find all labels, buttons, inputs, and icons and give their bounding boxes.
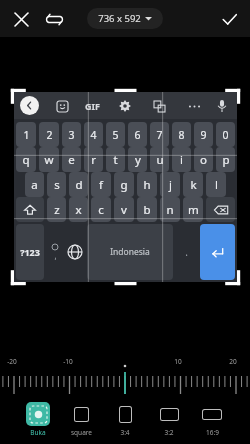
button[interactable]: Close <box>10 8 32 30</box>
button[interactable]: a <box>25 172 44 197</box>
button[interactable]: Shift <box>16 197 44 222</box>
staticText: 8 <box>178 128 185 142</box>
button[interactable]: r <box>84 147 103 172</box>
button[interactable]: 3:4 <box>113 402 137 437</box>
staticText: Indonesia <box>110 246 150 258</box>
button[interactable]: 4 <box>84 122 103 147</box>
staticText: 3 <box>68 128 75 142</box>
button[interactable]: square <box>69 402 93 437</box>
button[interactable]: Emoji <box>53 97 71 115</box>
button[interactable]: u <box>150 147 169 172</box>
staticText: , <box>54 250 57 261</box>
button[interactable]: 5 <box>106 122 125 147</box>
staticText: c <box>98 202 104 218</box>
button[interactable]: Comma <box>47 224 63 280</box>
button[interactable]: Done <box>218 8 240 30</box>
button[interactable]: e <box>62 147 81 172</box>
button[interactable]: Enter <box>200 224 235 280</box>
staticText: . <box>185 245 188 259</box>
staticText: y <box>135 152 141 168</box>
staticText: x <box>75 202 82 218</box>
button[interactable]: 736 x 592 <box>87 8 163 29</box>
staticText: b <box>143 202 151 218</box>
staticText: p <box>222 152 230 168</box>
button[interactable]: g <box>114 172 134 197</box>
staticText: square <box>71 428 92 437</box>
button[interactable]: l <box>206 172 226 197</box>
button[interactable]: w <box>39 147 59 172</box>
staticText: 16:9 <box>206 428 219 437</box>
button[interactable]: Rotate <box>43 8 65 30</box>
button[interactable]: q <box>16 147 36 172</box>
staticText: j <box>169 177 172 193</box>
staticText: 6 <box>134 128 141 142</box>
staticText: a <box>31 177 38 193</box>
button[interactable]: v <box>114 197 134 222</box>
button[interactable]: c <box>91 197 111 222</box>
button[interactable]: m <box>183 197 203 222</box>
button[interactable]: x <box>69 197 88 222</box>
button[interactable]: 16:9 <box>200 402 224 437</box>
staticText: 9 <box>200 128 207 142</box>
button[interactable]: 8 <box>172 122 191 147</box>
button[interactable]: 9 <box>194 122 213 147</box>
button[interactable]: s <box>47 172 66 197</box>
staticText: GIF <box>85 100 100 112</box>
button[interactable]: h <box>137 172 157 197</box>
button[interactable]: 6 <box>128 122 147 147</box>
button[interactable]: 3:2 <box>157 402 181 437</box>
button[interactable]: b <box>137 197 157 222</box>
button[interactable]: Indonesia <box>87 224 173 280</box>
button[interactable]: o <box>194 147 213 172</box>
staticText: l <box>215 177 218 193</box>
button[interactable]: f <box>91 172 111 197</box>
staticText: z <box>54 202 60 218</box>
staticText: 0 <box>222 128 229 142</box>
button[interactable]: More options <box>185 97 203 115</box>
button[interactable]: y <box>128 147 147 172</box>
staticText: Buka <box>30 428 46 437</box>
staticText: f <box>99 177 103 193</box>
staticText: 3:2 <box>164 428 174 437</box>
button[interactable]: p <box>216 147 235 172</box>
staticText: g <box>120 177 128 193</box>
button[interactable]: 7 <box>150 122 169 147</box>
button[interactable]: . <box>176 224 197 280</box>
button[interactable]: 3 <box>62 122 81 147</box>
button[interactable]: d <box>69 172 88 197</box>
button[interactable]: Backspace <box>206 197 235 222</box>
staticText: 3:4 <box>120 428 130 437</box>
staticText: n <box>166 202 174 218</box>
staticText: 5 <box>112 128 119 142</box>
staticText: u <box>156 152 164 168</box>
staticText: k <box>190 177 197 193</box>
staticText: d <box>75 177 83 193</box>
staticText: 20 <box>229 357 237 366</box>
button[interactable]: n <box>160 197 180 222</box>
staticText: 736 x 592 <box>98 12 141 25</box>
button[interactable]: 0 <box>216 122 235 147</box>
button[interactable]: t <box>106 147 125 172</box>
button[interactable]: z <box>47 197 66 222</box>
button[interactable]: Settings <box>116 97 134 115</box>
button[interactable]: GIF <box>85 100 100 112</box>
staticText: e <box>68 152 75 168</box>
staticText: o <box>200 152 207 168</box>
button[interactable]: j <box>160 172 180 197</box>
staticText: 2 <box>46 128 53 142</box>
button[interactable]: Translate <box>150 97 168 115</box>
button[interactable]: 1 <box>16 122 36 147</box>
button[interactable]: i <box>172 147 191 172</box>
staticText: i <box>180 152 183 168</box>
button[interactable]: Buka <box>26 402 50 437</box>
staticText: 1 <box>23 128 30 142</box>
button[interactable]: Change language <box>66 224 84 280</box>
staticText: 4 <box>90 128 97 142</box>
staticText: q <box>22 152 30 168</box>
button[interactable]: ?123 <box>16 224 44 280</box>
button[interactable]: Voice input <box>213 97 231 115</box>
button[interactable]: 2 <box>39 122 59 147</box>
staticText: ?123 <box>20 246 40 258</box>
button[interactable]: k <box>183 172 203 197</box>
button[interactable]: Back <box>20 96 39 115</box>
